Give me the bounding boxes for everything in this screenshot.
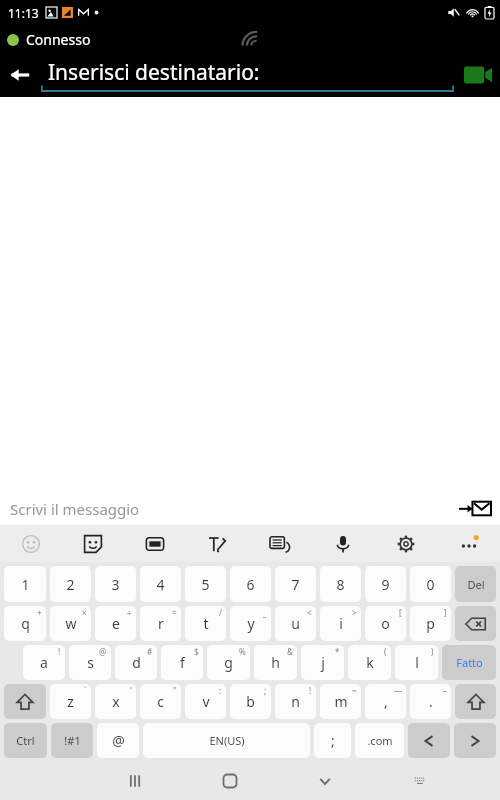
button[interactable]: Altro bbox=[437, 525, 500, 562]
button[interactable]: g bbox=[207, 645, 250, 680]
staticText: _ bbox=[263, 607, 267, 618]
button[interactable]: Tastiera mobile bbox=[248, 525, 311, 562]
button[interactable]: right bbox=[454, 723, 496, 758]
button[interactable]: Home bbox=[182, 762, 277, 800]
staticText: ) bbox=[431, 646, 434, 657]
staticText: , bbox=[384, 692, 388, 711]
staticText: z bbox=[67, 692, 74, 711]
staticText: h bbox=[271, 653, 280, 672]
button[interactable]: GIF bbox=[124, 525, 186, 562]
staticText: 6 bbox=[246, 575, 255, 594]
button[interactable]: x bbox=[95, 684, 136, 719]
button[interactable]: Emoji bbox=[0, 525, 62, 562]
button[interactable]: l bbox=[395, 645, 438, 680]
staticText: v bbox=[202, 692, 210, 711]
button[interactable]: .com bbox=[355, 723, 404, 758]
button[interactable]: left bbox=[408, 723, 450, 758]
staticText: 2 bbox=[66, 575, 75, 594]
staticText: * bbox=[335, 646, 340, 657]
button[interactable]: Scrivi il messaggio bbox=[0, 492, 500, 525]
button[interactable]: 8 bbox=[320, 566, 361, 602]
button[interactable]: Scrittura a mano bbox=[186, 525, 248, 562]
staticText: ! bbox=[309, 685, 312, 696]
staticText: — bbox=[394, 685, 402, 696]
button[interactable]: a bbox=[23, 645, 65, 680]
button[interactable]: Del bbox=[455, 566, 496, 602]
button[interactable]: o bbox=[365, 606, 406, 641]
button[interactable]: EN(US) bbox=[143, 723, 310, 758]
button[interactable]: m bbox=[320, 684, 361, 719]
button[interactable]: u bbox=[275, 606, 316, 641]
button[interactable]: i bbox=[320, 606, 361, 641]
button[interactable]: Impostazioni bbox=[374, 525, 437, 562]
staticText: ! bbox=[58, 646, 61, 657]
button[interactable]: Ctrl bbox=[4, 723, 47, 758]
staticText: < bbox=[307, 607, 312, 618]
staticText: !#1 bbox=[64, 733, 81, 748]
button[interactable]: backspace bbox=[455, 606, 496, 641]
button[interactable]: Sticker bbox=[62, 525, 124, 562]
button[interactable]: , bbox=[365, 684, 406, 719]
button[interactable]: b bbox=[230, 684, 271, 719]
button[interactable]: Indietro bbox=[0, 53, 40, 97]
button[interactable]: . bbox=[410, 684, 451, 719]
button[interactable]: 4 bbox=[140, 566, 181, 602]
staticText: @ bbox=[99, 646, 107, 657]
button[interactable]: @ bbox=[97, 723, 139, 758]
button[interactable]: v bbox=[185, 684, 226, 719]
button[interactable]: 3 bbox=[95, 566, 136, 602]
button[interactable]: p bbox=[410, 606, 451, 641]
button[interactable]: !#1 bbox=[51, 723, 93, 758]
staticText: ; bbox=[264, 685, 267, 696]
button[interactable]: 7 bbox=[275, 566, 316, 602]
button[interactable]: 0 bbox=[410, 566, 451, 602]
staticText: r bbox=[158, 614, 164, 633]
button[interactable]: Chiudi tastiera bbox=[277, 762, 372, 800]
staticText: t bbox=[203, 614, 209, 633]
staticText: 8 bbox=[336, 575, 345, 594]
button[interactable]: 5 bbox=[185, 566, 226, 602]
button[interactable]: j bbox=[301, 645, 344, 680]
button[interactable]: y bbox=[230, 606, 271, 641]
staticText: # bbox=[147, 646, 153, 657]
button[interactable]: Dettatura vocale bbox=[311, 525, 374, 562]
button[interactable]: s bbox=[69, 645, 111, 680]
staticText: 3 bbox=[111, 575, 120, 594]
button[interactable]: Invia bbox=[456, 492, 494, 525]
staticText: i bbox=[339, 614, 343, 633]
button[interactable]: q bbox=[4, 606, 46, 641]
button[interactable]: Fatto bbox=[442, 645, 496, 680]
staticText: c bbox=[157, 692, 164, 711]
button[interactable]: z bbox=[50, 684, 91, 719]
button[interactable]: Videochiamata bbox=[456, 53, 500, 97]
button[interactable]: shift bbox=[455, 684, 496, 719]
staticText: 9 bbox=[381, 575, 390, 594]
button[interactable]: n bbox=[275, 684, 316, 719]
button[interactable]: Cambia tastiera bbox=[372, 762, 467, 800]
staticText: 7 bbox=[291, 575, 300, 594]
button[interactable]: f bbox=[161, 645, 203, 680]
staticText: n bbox=[291, 692, 300, 711]
staticText: 0 bbox=[426, 575, 435, 594]
button[interactable]: k bbox=[348, 645, 391, 680]
staticText: 5 bbox=[201, 575, 210, 594]
staticText: Fatto bbox=[456, 655, 483, 670]
button[interactable]: r bbox=[140, 606, 181, 641]
button[interactable]: w bbox=[50, 606, 91, 641]
staticText: y bbox=[247, 614, 255, 633]
button[interactable]: d bbox=[115, 645, 157, 680]
button[interactable]: h bbox=[254, 645, 297, 680]
button[interactable]: c bbox=[140, 684, 181, 719]
button[interactable]: 1 bbox=[4, 566, 46, 602]
button[interactable]: ; bbox=[314, 723, 351, 758]
button[interactable]: 6 bbox=[230, 566, 271, 602]
staticText: j bbox=[321, 653, 325, 672]
staticText: ] bbox=[444, 607, 447, 618]
button[interactable]: 2 bbox=[50, 566, 91, 602]
button[interactable]: shift bbox=[4, 684, 46, 719]
button[interactable]: t bbox=[185, 606, 226, 641]
button[interactable]: Recenti bbox=[87, 762, 182, 800]
staticText: e bbox=[112, 614, 120, 633]
button[interactable]: 9 bbox=[365, 566, 406, 602]
button[interactable]: e bbox=[95, 606, 136, 641]
